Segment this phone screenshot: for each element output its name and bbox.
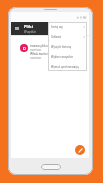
staticText: Wyczyść historię — [51, 45, 71, 49]
button[interactable]: Edit — [75, 145, 85, 155]
staticText: Wybierz wszystkie — [51, 55, 73, 59]
staticText: Odśwież — [51, 35, 62, 39]
staticText: Właściwości — [30, 52, 48, 56]
staticText: D — [23, 46, 26, 51]
button[interactable]: Sortuj wg — [48, 22, 87, 32]
button[interactable]: Właściwości — [11, 52, 89, 60]
button[interactable]: Menu — [11, 22, 22, 35]
button[interactable]: Menu — [11, 22, 48, 35]
button[interactable]: Wybierz wszystkie — [48, 52, 87, 62]
staticText: Sortuj wg — [51, 25, 63, 29]
staticText: Wymuś synchronizację — [51, 65, 79, 69]
button[interactable]: Odśwież — [48, 32, 87, 42]
staticText: nazwa pliku — [30, 44, 48, 48]
staticText: rozmiar — [30, 56, 42, 60]
staticText: Pliki — [24, 24, 33, 30]
button[interactable]: Wymuś synchronizację — [48, 62, 87, 71]
staticText: Wszystkie — [24, 30, 36, 34]
button[interactable]: Wyczyść historię — [48, 42, 87, 52]
button[interactable]: Home — [41, 164, 61, 170]
staticText: rozmiar — [30, 48, 42, 52]
button[interactable]: D — [11, 44, 89, 52]
